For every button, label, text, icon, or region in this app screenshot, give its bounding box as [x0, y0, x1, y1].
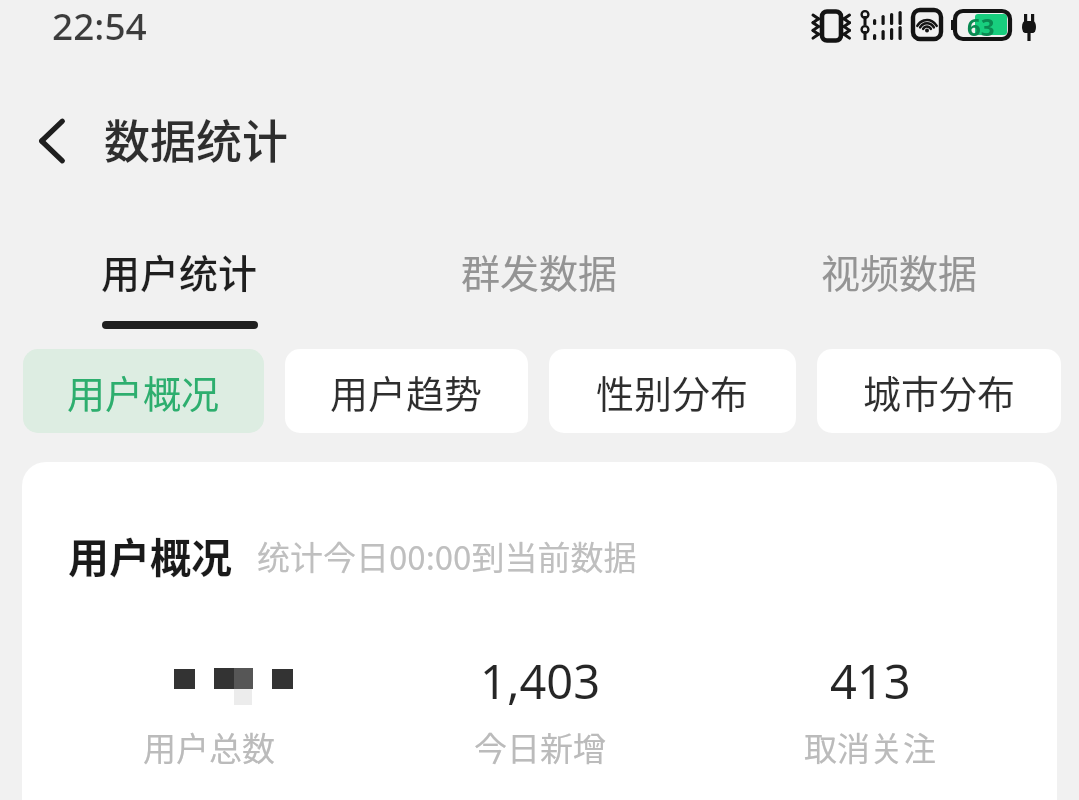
staticText: 数据统计: [104, 105, 288, 172]
staticText: 性别分布: [596, 364, 749, 419]
staticText: 用户总数: [143, 723, 275, 771]
staticText: 统计今日00:00到当前数据: [257, 532, 637, 580]
staticText: 用户概况: [67, 364, 220, 419]
staticText: 视频数据: [821, 243, 978, 299]
staticText: 63: [967, 10, 995, 43]
staticText: 用户概况: [68, 525, 232, 584]
button[interactable]: 视频数据: [719, 243, 1079, 353]
staticText: 用户统计: [101, 243, 258, 299]
button[interactable]: 用户统计: [0, 243, 359, 353]
staticText: 用户趋势: [330, 364, 483, 419]
button[interactable]: 城市分布: [817, 349, 1061, 433]
staticText: 今日新增: [474, 723, 606, 771]
staticText: 取消关注: [804, 723, 936, 771]
button[interactable]: 用户趋势: [285, 349, 528, 433]
button[interactable]: Back: [22, 108, 88, 174]
staticText: 群发数据: [461, 243, 618, 299]
button[interactable]: 用户概况: [23, 349, 264, 433]
button[interactable]: 群发数据: [359, 243, 719, 353]
staticText: 城市分布: [863, 364, 1016, 419]
button[interactable]: 性别分布: [549, 349, 796, 433]
staticText: 22:54: [52, 0, 147, 50]
staticText: 1,403: [480, 649, 601, 713]
staticText: 413: [830, 649, 911, 713]
